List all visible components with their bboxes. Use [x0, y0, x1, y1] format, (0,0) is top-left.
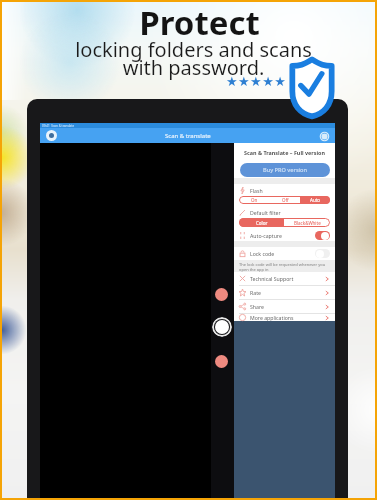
- staticText: More applications: [250, 314, 294, 321]
- staticText: Scan & translate: [165, 132, 211, 140]
- button[interactable]: Toggle: [315, 249, 330, 258]
- staticText: Rate: [250, 289, 261, 296]
- staticText: Auto-capture: [250, 232, 282, 239]
- button[interactable]: Capture: [212, 317, 232, 337]
- button[interactable]: Auto: [300, 196, 330, 204]
- button[interactable]: Technical Support: [239, 272, 330, 285]
- staticText: locking folders and scans with password.: [75, 36, 312, 81]
- button[interactable]: Toggle: [315, 231, 330, 240]
- staticText: Auto: [310, 197, 321, 203]
- button[interactable]: Flash: [215, 288, 228, 301]
- button[interactable]: Auto-capture: [239, 229, 330, 241]
- staticText: Default filter: [250, 209, 281, 216]
- staticText: Black&White: [294, 220, 321, 226]
- button[interactable]: Share: [239, 300, 330, 313]
- button[interactable]: Settings: [318, 130, 330, 142]
- button[interactable]: Rate: [239, 286, 330, 299]
- button[interactable]: Lock code: [239, 247, 330, 260]
- staticText: Buy PRO version: [263, 166, 308, 174]
- button[interactable]: Buy PRO version: [240, 163, 330, 177]
- staticText: Color: [256, 220, 268, 226]
- staticText: Scan & Translate – Full version: [244, 149, 325, 156]
- staticText: Technical Support: [250, 275, 294, 282]
- staticText: ★★★★★: [226, 74, 287, 89]
- button[interactable]: Gallery: [215, 355, 228, 368]
- staticText: Protect: [139, 0, 260, 45]
- staticText: 09:41 Scan & translate: [42, 124, 75, 128]
- staticText: Off: [282, 197, 289, 203]
- button[interactable]: On: [239, 196, 270, 204]
- other: Protected badge: [289, 56, 335, 118]
- staticText: Flash: [250, 187, 263, 194]
- staticText: Lock code: [250, 250, 275, 257]
- button[interactable]: Off: [270, 196, 300, 204]
- staticText: Share: [250, 303, 264, 310]
- button[interactable]: Camera mode: [46, 130, 57, 141]
- button[interactable]: More applications: [239, 314, 330, 321]
- button[interactable]: Color: [239, 218, 284, 227]
- button[interactable]: Black&White: [284, 218, 330, 227]
- staticText: The lock code will be requested whenever…: [239, 262, 335, 272]
- staticText: On: [251, 197, 258, 203]
